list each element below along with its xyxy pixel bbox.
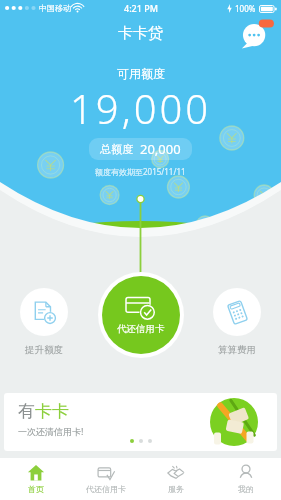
staticText: 代还信用卡 (86, 484, 126, 494)
button[interactable]: 代还信用卡 (71, 458, 141, 500)
staticText: 首页 (28, 484, 44, 494)
button[interactable]: 算算费用 (213, 288, 261, 356)
staticText: 卡卡贷 (118, 24, 163, 43)
staticText: 可用额度 (117, 66, 165, 81)
staticText: 有 (18, 401, 35, 422)
staticText: 一次还清信用卡! (18, 425, 84, 437)
staticText: 卡卡 (35, 401, 69, 422)
button[interactable]: 服务 (141, 458, 211, 500)
staticText: 19,000 (70, 81, 212, 135)
staticText: 服务 (168, 484, 184, 494)
button[interactable]: 提升额度 (20, 288, 68, 356)
button[interactable]: 代还信用卡 (102, 276, 180, 354)
staticText: 总额度 (100, 142, 133, 156)
button[interactable]: 有 (4, 393, 277, 451)
button[interactable]: 我的 (211, 458, 281, 500)
staticText: 提升额度 (25, 344, 63, 356)
staticText: 算算费用 (218, 344, 256, 356)
staticText: 代还信用卡 (117, 323, 165, 335)
staticText: 我的 (238, 484, 254, 494)
button[interactable]: Messages (239, 16, 275, 50)
button[interactable]: 首页 (0, 458, 71, 500)
staticText: 100% (235, 3, 256, 14)
staticText: 4:21 PM (124, 2, 158, 14)
staticText: 额度有效期至2015/11/11 (95, 166, 186, 177)
staticText: 20,000 (140, 140, 181, 158)
staticText: 中国移动 (39, 3, 71, 13)
